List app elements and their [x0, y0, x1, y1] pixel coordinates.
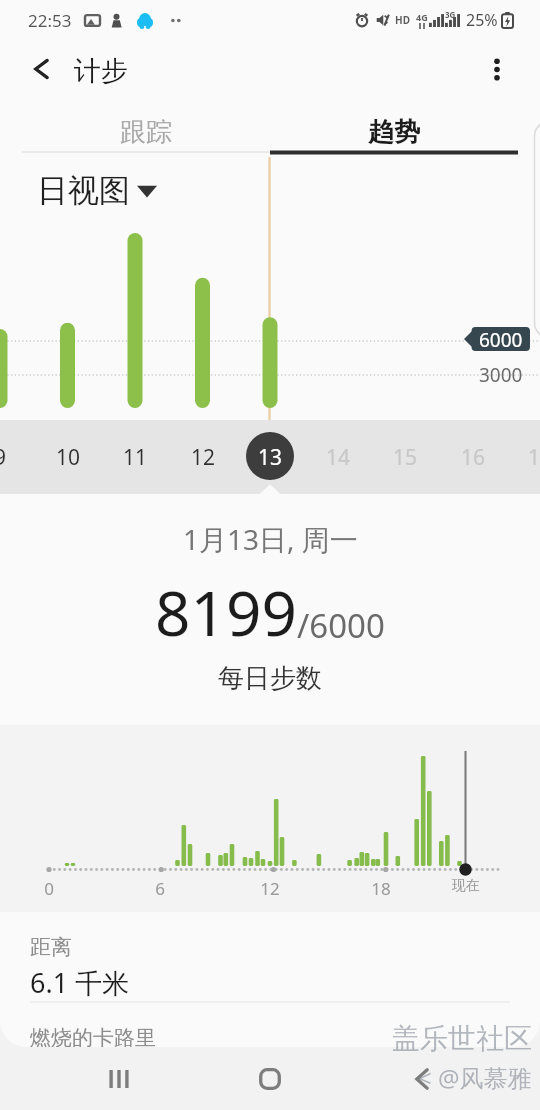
staticText: 0	[19, 877, 79, 900]
staticText: 14	[308, 443, 368, 472]
staticText: 趋势	[368, 116, 420, 149]
staticText: 22:53	[28, 9, 72, 32]
staticText: 16	[443, 443, 503, 472]
staticText: 17	[510, 443, 540, 472]
staticText: 现在	[436, 877, 496, 895]
staticText: 10	[38, 443, 98, 472]
staticText: 9	[0, 443, 30, 472]
staticText: 15	[375, 443, 435, 472]
staticText: 计步	[74, 54, 128, 88]
staticText: 燃烧的卡路里	[30, 1025, 156, 1047]
staticText: 4G	[416, 11, 428, 23]
button[interactable]: Back	[398, 1055, 446, 1103]
staticText: 13	[240, 443, 300, 472]
button[interactable]: 燃烧的卡路里	[0, 1003, 540, 1047]
staticText: 18	[351, 877, 411, 900]
button[interactable]: 趋势	[270, 102, 518, 157]
staticText: 日视图	[37, 171, 130, 210]
staticText: 3000	[479, 362, 523, 388]
staticText: 盖乐世社区	[392, 1021, 532, 1056]
staticText: /6000	[297, 603, 385, 648]
staticText: 12	[240, 877, 300, 900]
button[interactable]: 距离	[0, 912, 540, 1002]
staticText: 11	[105, 443, 165, 472]
staticText: 每日步数	[218, 662, 322, 695]
staticText: 1月13日, 周一	[183, 520, 358, 558]
staticText: 跟踪	[120, 116, 172, 149]
staticText: HD	[395, 13, 410, 27]
button[interactable]: 日视图	[33, 167, 161, 214]
button[interactable]: 跟踪	[22, 102, 270, 157]
staticText: 6000	[479, 327, 523, 353]
button[interactable]: Recents	[95, 1055, 143, 1103]
staticText: 25%	[466, 9, 498, 31]
staticText: 12	[173, 443, 233, 472]
staticText: < @风慕雅	[418, 1061, 532, 1094]
staticText: 3G	[445, 9, 456, 20]
staticText: 6	[130, 877, 190, 900]
button[interactable]: More options	[473, 47, 521, 95]
button[interactable]: Back	[17, 47, 65, 95]
staticText: 距离	[30, 934, 72, 960]
button[interactable]: Home	[246, 1055, 294, 1103]
staticText: 8199	[155, 570, 297, 654]
staticText: 6.1 千米	[30, 964, 130, 1001]
